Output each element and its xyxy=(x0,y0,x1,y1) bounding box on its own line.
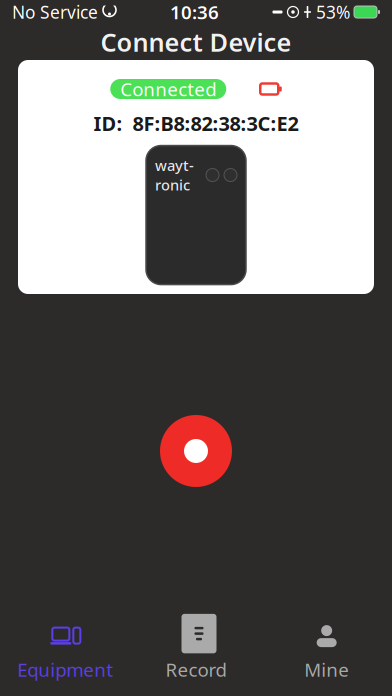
staticText: Equipment xyxy=(17,657,113,682)
button[interactable]: Record xyxy=(160,415,232,487)
staticText: Connect Device xyxy=(100,25,291,59)
button[interactable]: Mine xyxy=(261,608,392,696)
staticText: Record xyxy=(165,657,226,682)
button[interactable]: Record xyxy=(131,608,261,696)
button[interactable]: Equipment xyxy=(0,608,131,696)
staticText: 10:36 xyxy=(170,0,219,24)
staticText: Connected xyxy=(120,77,216,101)
staticText: 53% xyxy=(316,0,350,23)
staticText: No Service xyxy=(12,0,98,23)
staticText: waytronic xyxy=(155,156,194,195)
staticText: ID: 8F:B8:82:38:3C:E2 xyxy=(93,110,298,137)
staticText: Mine xyxy=(304,657,349,682)
